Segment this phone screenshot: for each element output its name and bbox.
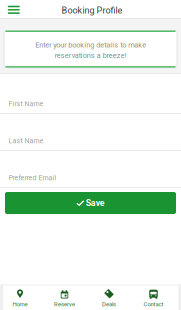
staticText: Last Name — [9, 137, 44, 145]
staticText: Save — [86, 198, 105, 208]
staticText: Reserve — [54, 301, 75, 308]
button[interactable]: Contact — [131, 289, 176, 308]
button[interactable]: First Name — [0, 77, 181, 114]
button[interactable]: Menu — [5, 4, 23, 16]
staticText: Deals — [102, 301, 116, 308]
staticText: Enter your booking details to make reser… — [35, 41, 146, 60]
staticText: Booking Profile — [61, 5, 122, 16]
button[interactable]: Last Name — [0, 114, 181, 151]
staticText: Contact — [143, 301, 163, 308]
button[interactable]: Save — [0, 192, 181, 214]
button[interactable]: Deals — [87, 289, 131, 308]
staticText: Home — [12, 301, 27, 308]
button[interactable]: Preferred Email — [0, 151, 181, 188]
button[interactable]: Home — [0, 289, 42, 308]
button[interactable]: Reserve — [42, 289, 87, 308]
staticText: Preferred Email — [9, 174, 57, 182]
staticText: First Name — [9, 100, 44, 108]
